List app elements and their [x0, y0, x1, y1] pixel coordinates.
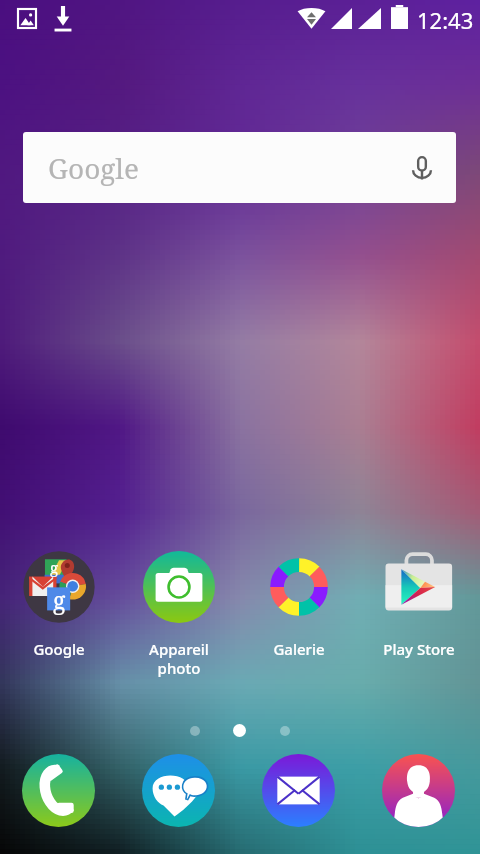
button[interactable]: Contacts: [358, 753, 478, 827]
staticText: Appareil photo: [149, 639, 209, 678]
staticText: g: [50, 557, 59, 577]
staticText: Play Store: [383, 639, 455, 659]
button[interactable]: Play Store: [359, 551, 479, 659]
staticText: g: [53, 584, 66, 615]
button[interactable]: Appareil photo: [119, 551, 239, 678]
button[interactable]: g: [0, 551, 119, 659]
button[interactable]: Google: [23, 132, 456, 203]
staticText: Google: [33, 639, 85, 659]
staticText: Google: [48, 149, 140, 187]
staticText: Galerie: [273, 639, 325, 659]
button[interactable]: Voice search: [406, 152, 438, 184]
staticText: 12:43: [417, 5, 474, 35]
button[interactable]: Email: [238, 753, 358, 827]
button[interactable]: Galerie: [239, 551, 359, 659]
button[interactable]: Phone: [0, 753, 118, 827]
button[interactable]: Messages: [118, 753, 238, 827]
